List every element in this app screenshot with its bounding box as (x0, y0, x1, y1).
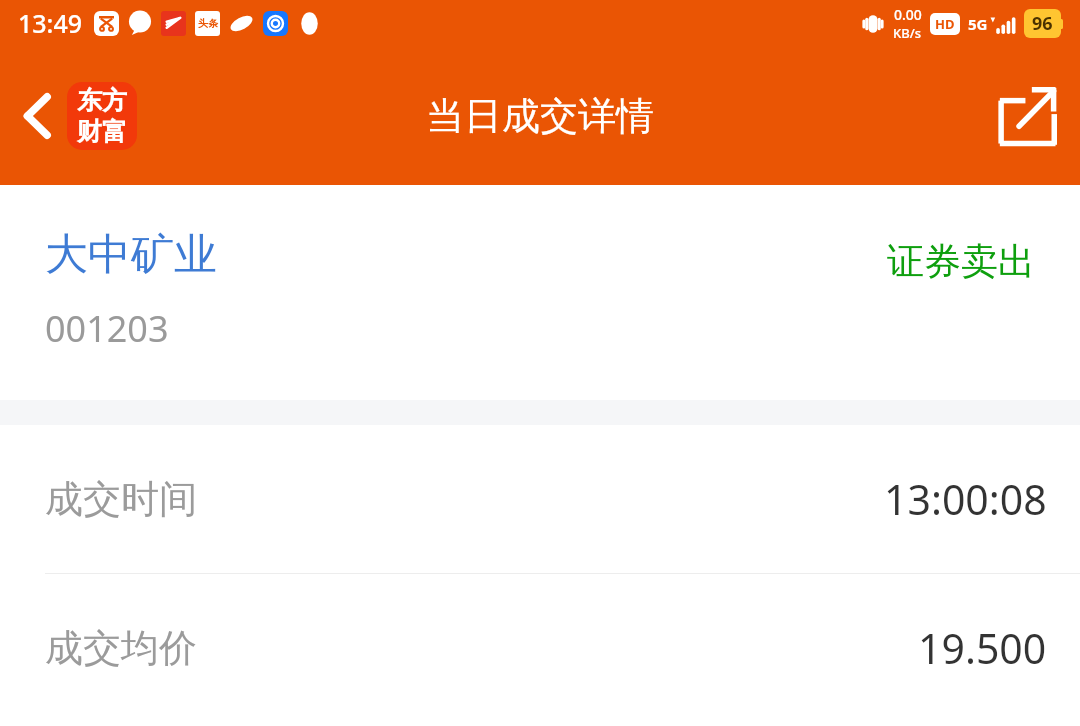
staticText: 96 (1032, 11, 1053, 36)
staticText: 证券卖出 (887, 238, 1035, 285)
staticText: 0.00 (894, 5, 922, 24)
staticText: 成交时间 (45, 475, 197, 523)
staticText: 头条 (198, 17, 218, 30)
staticText: 19.500 (918, 620, 1047, 676)
button[interactable]: Share (982, 70, 1080, 162)
staticText: KB/s (893, 24, 922, 42)
staticText: 财富 (77, 116, 127, 147)
staticText: 大中矿业 (45, 228, 217, 282)
button[interactable]: 成交时间 (0, 425, 1080, 573)
button[interactable]: 成交均价 (0, 574, 1080, 722)
button[interactable]: Back (0, 68, 149, 164)
staticText: 13:49 (18, 6, 83, 40)
button[interactable]: 大中矿业 (0, 185, 1080, 400)
staticText: 当日成交详情 (426, 92, 654, 140)
staticText: HD (935, 15, 955, 33)
staticText: 成交均价 (45, 624, 197, 672)
staticText: 001203 (45, 304, 169, 353)
staticText: 13:00:08 (884, 471, 1047, 527)
staticText: 5G (968, 14, 988, 34)
staticText: 东方 (77, 85, 127, 116)
